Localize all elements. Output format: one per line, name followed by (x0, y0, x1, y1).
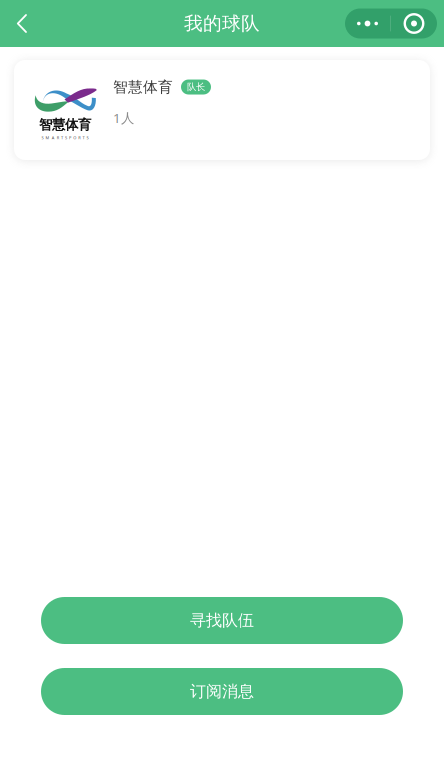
staticText: SMARTSPORTS (41, 135, 88, 140)
staticText: 1人 (113, 109, 134, 127)
button[interactable]: 智慧体育 (14, 60, 430, 160)
button[interactable]: 订阅消息 (41, 668, 403, 715)
button[interactable]: 更多功能 (345, 8, 437, 38)
staticText: 队长 (187, 81, 205, 93)
button[interactable]: 寻找队伍 (41, 597, 403, 644)
staticText: 寻找队伍 (190, 611, 254, 630)
staticText: 智慧体育 (113, 78, 173, 96)
staticText: 订阅消息 (190, 682, 254, 701)
button[interactable]: 返回 (0, 0, 44, 47)
staticText: 智慧体育 (39, 117, 91, 133)
staticText: 我的球队 (184, 12, 260, 35)
